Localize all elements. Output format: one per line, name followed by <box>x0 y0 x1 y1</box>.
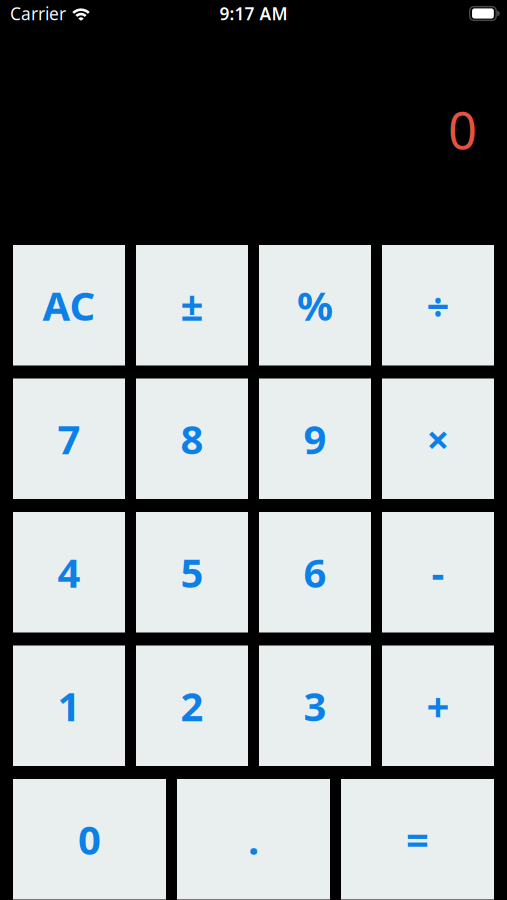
staticText: 3 <box>303 679 326 732</box>
button[interactable]: 9 <box>259 378 371 499</box>
button[interactable]: 2 <box>136 645 248 766</box>
staticText: + <box>426 679 449 732</box>
button[interactable]: ± <box>136 245 248 365</box>
staticText: 0 <box>78 813 101 866</box>
button[interactable]: . <box>177 779 330 899</box>
staticText: × <box>426 412 449 465</box>
staticText: 9:17 AM <box>219 2 287 25</box>
staticText: 9 <box>303 412 326 465</box>
button[interactable]: × <box>382 378 494 499</box>
staticText: . <box>248 813 259 866</box>
button[interactable]: 8 <box>136 378 248 499</box>
staticText: ± <box>180 279 203 332</box>
staticText: = <box>406 813 429 866</box>
staticText: 6 <box>303 546 326 599</box>
button[interactable]: AC <box>13 245 125 365</box>
staticText: 2 <box>180 679 203 732</box>
staticText: AC <box>42 279 95 332</box>
staticText: 0 <box>448 96 477 163</box>
button[interactable]: 4 <box>13 512 125 632</box>
staticText: Carrier <box>10 2 66 25</box>
staticText: 4 <box>57 546 80 599</box>
button[interactable]: = <box>341 779 494 899</box>
button[interactable]: 5 <box>136 512 248 632</box>
button[interactable]: 3 <box>259 645 371 766</box>
staticText: 5 <box>180 546 203 599</box>
button[interactable]: 1 <box>13 645 125 766</box>
staticText: ÷ <box>426 279 449 332</box>
button[interactable]: 7 <box>13 378 125 499</box>
staticText: - <box>431 546 444 599</box>
staticText: % <box>297 279 333 332</box>
button[interactable]: % <box>259 245 371 365</box>
button[interactable]: - <box>382 512 494 632</box>
staticText: 1 <box>57 679 80 732</box>
button[interactable]: 6 <box>259 512 371 632</box>
staticText: 7 <box>57 412 80 465</box>
button[interactable]: ÷ <box>382 245 494 365</box>
staticText: 8 <box>180 412 203 465</box>
button[interactable]: + <box>382 645 494 766</box>
button[interactable]: 0 <box>13 779 166 899</box>
